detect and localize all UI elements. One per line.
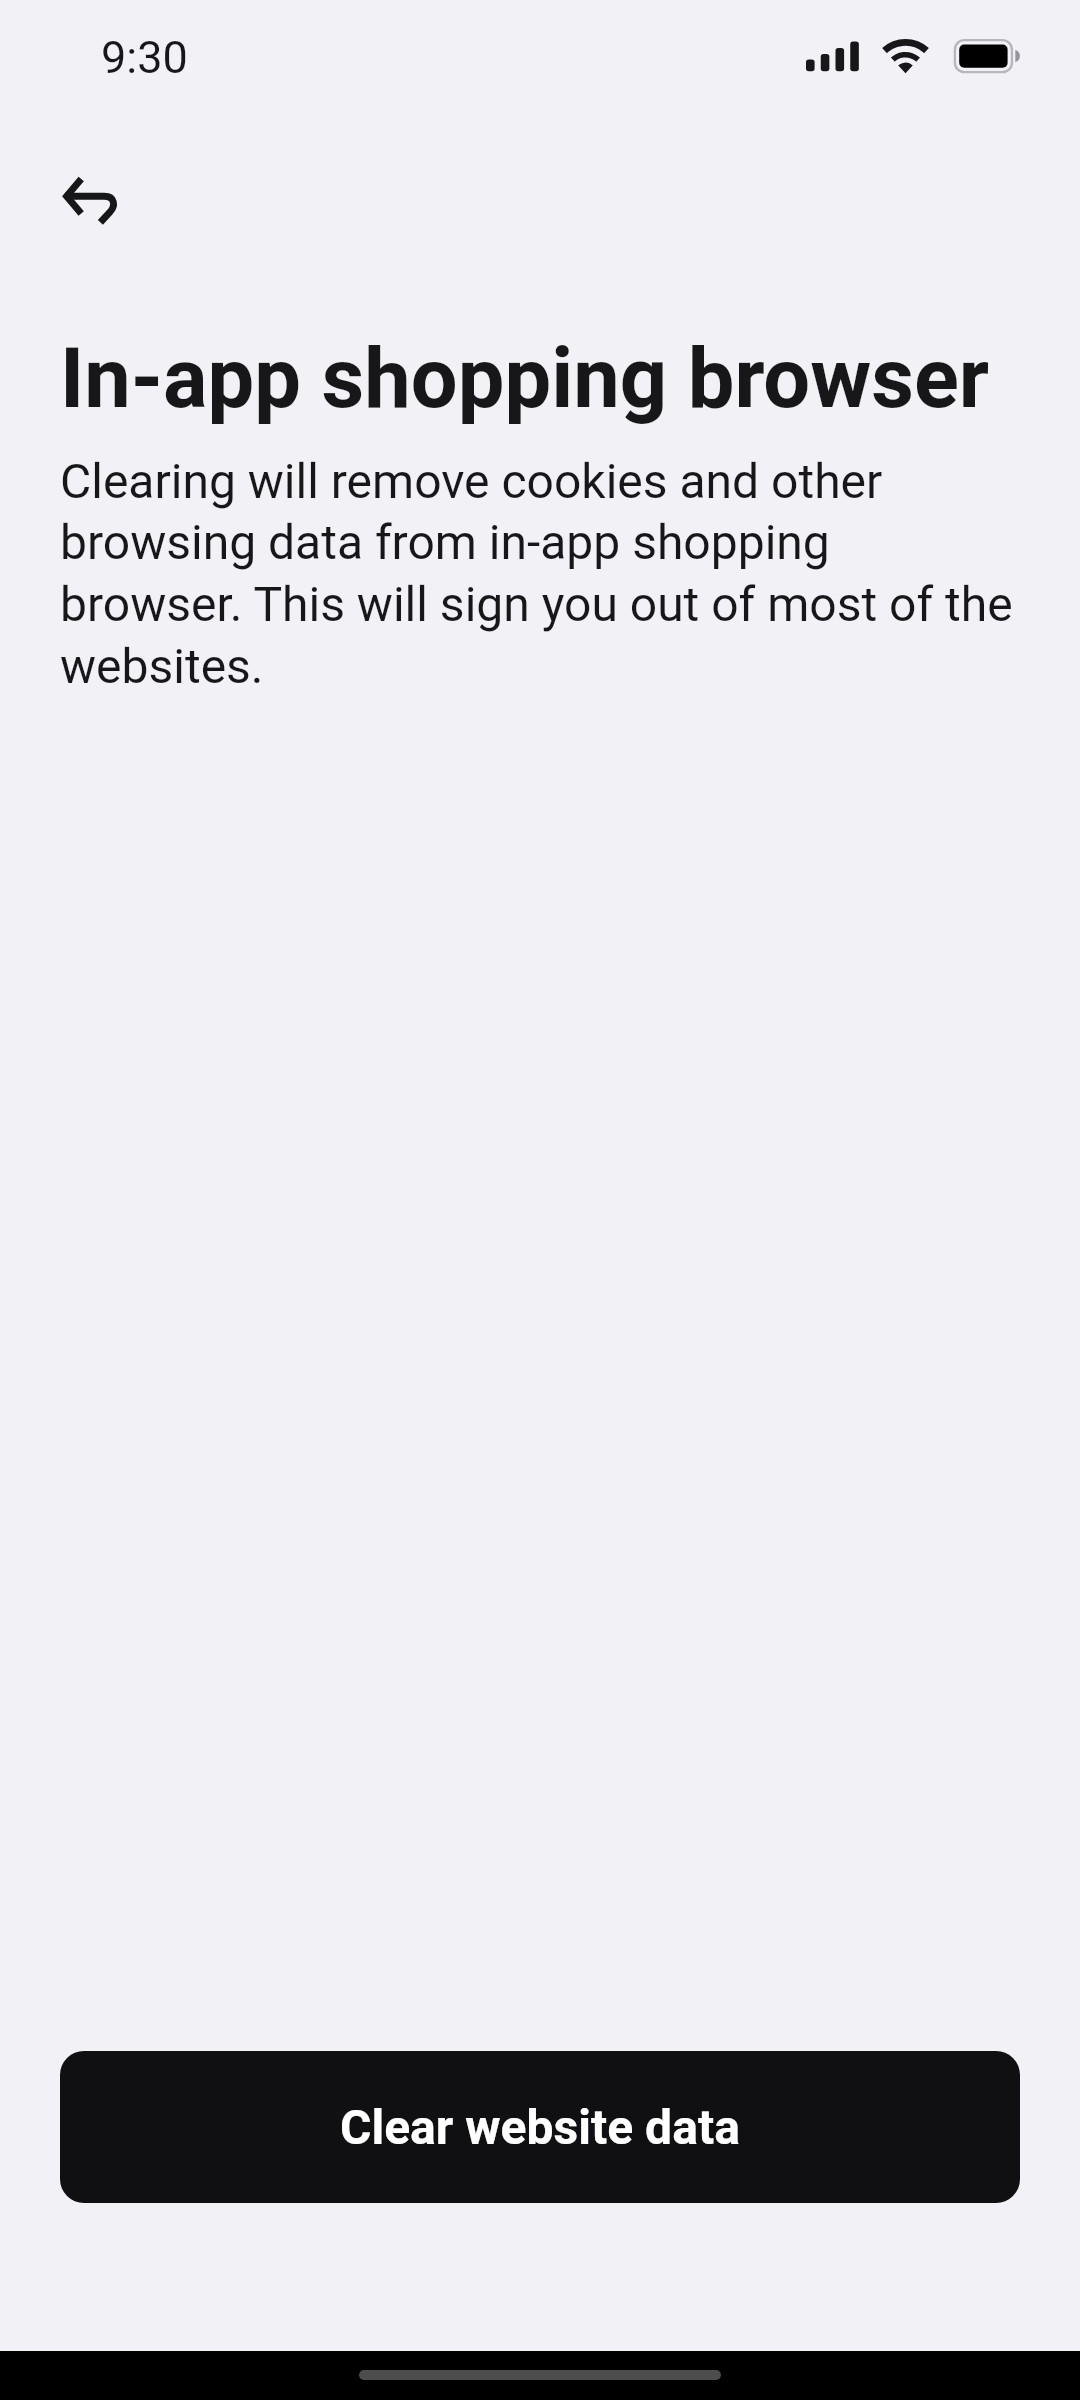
staticText: In-app shopping browser [60, 330, 1040, 427]
button[interactable]: Clear website data [60, 2051, 1020, 2203]
staticText: Clear website data [340, 2099, 740, 2155]
other: Signal, Wi-Fi and battery status [806, 38, 1022, 74]
staticText: 9:30 [101, 31, 188, 84]
button[interactable]: Back [34, 152, 146, 264]
staticText: Clearing will remove cookies and other b… [60, 453, 1018, 695]
